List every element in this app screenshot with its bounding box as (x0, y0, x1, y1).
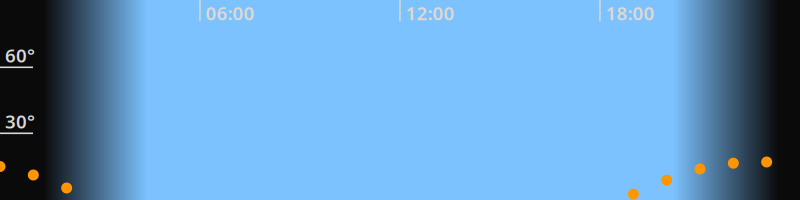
staticText: 60° (5, 43, 35, 68)
staticText: 12:00 (405, 1, 454, 25)
staticText: 18:00 (605, 1, 654, 25)
staticText: 30° (5, 109, 35, 134)
staticText: 06:00 (205, 1, 254, 25)
